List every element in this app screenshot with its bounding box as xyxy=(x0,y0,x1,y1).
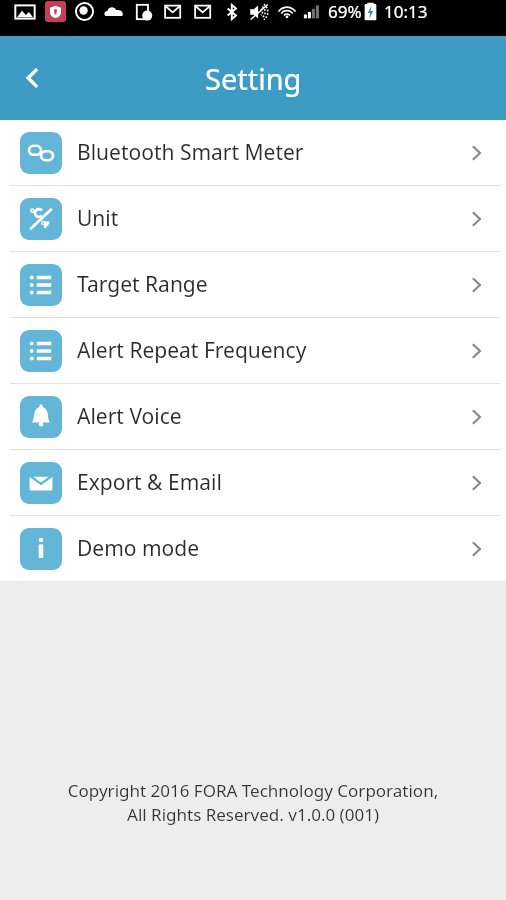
staticText: Unit xyxy=(77,204,119,233)
staticText: Target Range xyxy=(77,270,208,299)
staticText: 69% xyxy=(328,0,362,23)
button[interactable]: Demo mode xyxy=(0,516,506,581)
button[interactable]: Alert Voice xyxy=(0,384,506,449)
staticText: Setting xyxy=(205,59,302,98)
button[interactable]: Back xyxy=(6,51,60,105)
button[interactable]: Unit xyxy=(0,186,506,251)
staticText: Bluetooth Smart Meter xyxy=(77,138,304,167)
staticText: 10:13 xyxy=(384,0,428,23)
button[interactable]: Export & Email xyxy=(0,450,506,515)
staticText: Demo mode xyxy=(77,534,200,563)
button[interactable]: Bluetooth Smart Meter xyxy=(0,120,506,185)
staticText: Copyright 2016 FORA Technology Corporati… xyxy=(0,779,506,826)
button[interactable]: Alert Repeat Frequency xyxy=(0,318,506,383)
staticText: Alert Voice xyxy=(77,402,182,431)
button[interactable]: Target Range xyxy=(0,252,506,317)
staticText: Export & Email xyxy=(77,468,222,497)
staticText: Alert Repeat Frequency xyxy=(77,336,307,365)
